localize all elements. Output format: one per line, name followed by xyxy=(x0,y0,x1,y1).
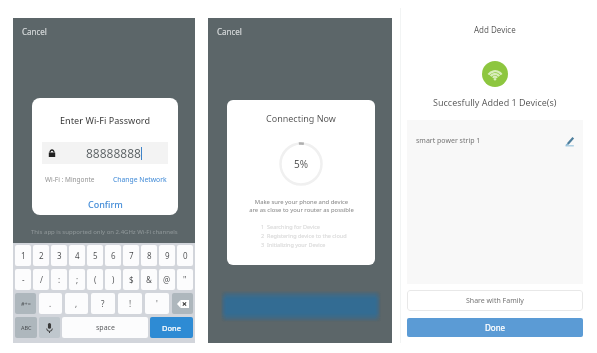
staticText: $ xyxy=(129,274,134,285)
button[interactable]: ( xyxy=(87,269,103,290)
staticText: 88888888 xyxy=(86,145,141,161)
button[interactable]: 2 xyxy=(33,245,49,266)
staticText: Change Network xyxy=(113,175,167,184)
button[interactable]: 8 xyxy=(141,245,157,266)
button[interactable]: 1 xyxy=(15,245,31,266)
button[interactable]: 5 xyxy=(87,245,103,266)
button[interactable]: 0 xyxy=(177,245,193,266)
staticText: ) xyxy=(112,274,115,285)
staticText: & xyxy=(146,274,152,285)
button[interactable]: $ xyxy=(123,269,139,290)
staticText: 1 xyxy=(21,250,26,261)
staticText: 3 xyxy=(57,250,62,261)
staticText: space xyxy=(96,323,115,333)
button[interactable]: Share with Family xyxy=(407,290,583,311)
staticText: 9 xyxy=(165,250,170,261)
staticText: / xyxy=(40,274,43,285)
staticText: ' xyxy=(156,298,158,309)
staticText: #+= xyxy=(21,300,31,307)
staticText: Wi-Fi : Mingonte xyxy=(45,175,95,184)
staticText: ( xyxy=(94,274,97,285)
staticText: Cancel xyxy=(217,26,242,37)
staticText: 6 xyxy=(111,250,116,261)
staticText: " xyxy=(183,274,187,285)
button[interactable]: ) xyxy=(105,269,121,290)
staticText: 0 xyxy=(183,250,188,261)
button[interactable]: 4 xyxy=(69,245,85,266)
staticText: 3 Initializing your Device xyxy=(261,241,326,248)
button[interactable]: ; xyxy=(69,269,85,290)
button[interactable]: , xyxy=(65,293,88,314)
staticText: Make sure your phone and device are as c… xyxy=(249,198,354,214)
staticText: Connecting Now xyxy=(266,112,336,124)
button[interactable]: 9 xyxy=(159,245,175,266)
staticText: 4 xyxy=(75,250,80,261)
staticText: ! xyxy=(129,298,132,309)
staticText: Done xyxy=(162,323,181,333)
button[interactable]: / xyxy=(33,269,49,290)
staticText: 7 xyxy=(129,250,134,261)
staticText: 5% xyxy=(294,157,309,171)
button[interactable]: Backspace xyxy=(172,293,193,314)
staticText: 5 xyxy=(93,250,98,261)
staticText: 8 xyxy=(147,250,152,261)
staticText: ? xyxy=(101,298,105,309)
staticText: Enter Wi-Fi Password xyxy=(60,114,151,126)
staticText: ABC xyxy=(21,324,32,331)
staticText: 1 Searching for Device xyxy=(261,223,320,230)
button[interactable]: - xyxy=(15,269,31,290)
staticText: Cancel xyxy=(22,26,47,37)
button[interactable]: 7 xyxy=(123,245,139,266)
button[interactable]: ! xyxy=(118,293,142,314)
staticText: 2 xyxy=(39,250,44,261)
button[interactable]: ' xyxy=(145,293,169,314)
staticText: Add Device xyxy=(474,24,516,35)
staticText: This app is supported only on 2.4GHz Wi-… xyxy=(31,228,178,236)
staticText: @ xyxy=(163,274,171,285)
button[interactable]: " xyxy=(177,269,193,290)
button[interactable]: : xyxy=(51,269,67,290)
button[interactable]: & xyxy=(141,269,157,290)
staticText: - xyxy=(22,274,25,285)
button[interactable]: 3 xyxy=(51,245,67,266)
button[interactable]: #+= xyxy=(15,293,36,314)
button[interactable]: space xyxy=(62,317,148,338)
staticText: . xyxy=(49,298,52,309)
staticText: Succesfully Added 1 Device(s) xyxy=(433,96,557,108)
staticText: Confirm xyxy=(88,198,123,210)
button[interactable]: Done xyxy=(150,317,193,338)
button[interactable]: Microphone xyxy=(39,317,60,338)
button[interactable]: @ xyxy=(159,269,175,290)
staticText: : xyxy=(58,274,61,285)
staticText: smart power strip 1 xyxy=(416,136,481,146)
staticText: , xyxy=(75,298,78,309)
staticText: 2 Registering device to the cloud xyxy=(261,232,347,239)
button[interactable]: 6 xyxy=(105,245,121,266)
staticText: Share with Family xyxy=(466,296,524,306)
button[interactable]: ? xyxy=(91,293,115,314)
button[interactable]: ABC xyxy=(15,317,37,338)
button[interactable]: smart power strip 1 xyxy=(416,120,574,162)
button[interactable]: . xyxy=(39,293,62,314)
other: Edit device name xyxy=(565,137,574,146)
staticText: ; xyxy=(76,274,79,285)
staticText: Done xyxy=(485,322,506,333)
button[interactable]: Done xyxy=(407,318,583,337)
